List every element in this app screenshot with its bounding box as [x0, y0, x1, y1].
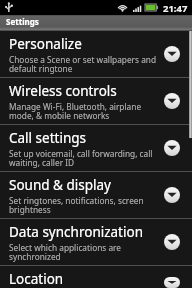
staticText: Choose a Scene or set wallpapers and def… — [9, 54, 161, 74]
staticText: Wireless controls — [9, 82, 117, 100]
other: Expand — [164, 46, 180, 62]
other: Expand — [164, 93, 180, 109]
other: Expand — [164, 234, 180, 250]
staticText: Data synchronization — [9, 223, 143, 241]
staticText: Location — [9, 270, 64, 288]
staticText: Set up voicemail, call forwarding, call … — [9, 148, 161, 168]
button[interactable]: Sound & display — [0, 172, 192, 218]
button[interactable]: Location — [0, 266, 192, 288]
button[interactable]: Call settings — [0, 125, 192, 171]
staticText: Call settings — [9, 129, 87, 147]
other: Expand — [164, 140, 180, 156]
other: Expand — [164, 277, 180, 288]
staticText: Personalize — [9, 35, 82, 53]
button[interactable]: Personalize — [0, 31, 192, 77]
other: Expand — [164, 187, 180, 203]
staticText: Set ringtones, notifications, screen bri… — [9, 195, 161, 215]
staticText: Sound & display — [9, 176, 111, 194]
button[interactable]: Data synchronization — [0, 219, 192, 265]
staticText: 21:47 — [163, 2, 188, 15]
button[interactable]: Wireless controls — [0, 78, 192, 124]
staticText: Manage Wi-Fi, Bluetooth, airplane mode, … — [9, 101, 161, 121]
staticText: Select which applications are synchroniz… — [9, 242, 161, 262]
staticText: Settings — [6, 16, 39, 27]
